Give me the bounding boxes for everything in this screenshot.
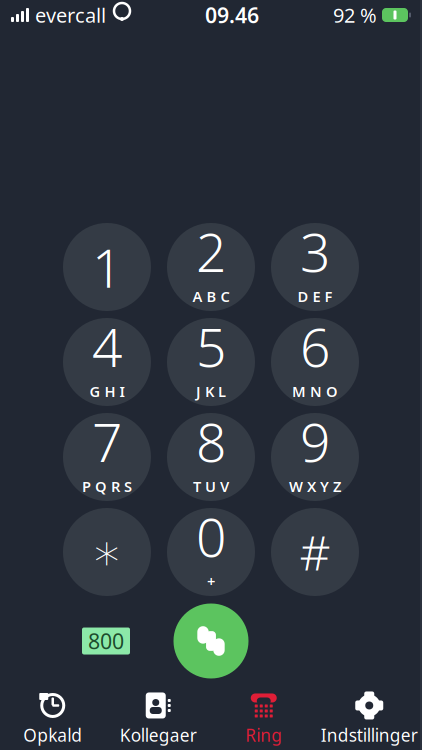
staticText: 7: [92, 406, 122, 477]
button[interactable]: 800: [82, 627, 130, 654]
staticText: 800: [88, 627, 124, 655]
staticText: evercall: [35, 2, 106, 28]
staticText: J K L: [196, 382, 226, 401]
staticText: Opkald: [23, 723, 82, 746]
button[interactable]: 5: [167, 318, 255, 406]
staticText: 09.46: [205, 1, 259, 29]
button[interactable]: 8: [167, 413, 255, 501]
button[interactable]: Call: [173, 603, 248, 678]
staticText: Ring: [245, 723, 282, 746]
staticText: 1: [92, 232, 122, 302]
button[interactable]: 0: [167, 508, 255, 596]
button[interactable]: Kollegaer: [105, 689, 211, 749]
button[interactable]: 7: [63, 413, 151, 501]
button[interactable]: 6: [271, 318, 359, 406]
button[interactable]: 9: [271, 413, 359, 501]
staticText: Indstillinger: [321, 723, 418, 746]
staticText: 92 %: [333, 2, 377, 28]
button[interactable]: ∗: [63, 508, 151, 596]
staticText: ∗: [91, 523, 123, 581]
staticText: 0: [196, 501, 226, 572]
staticText: 4: [92, 311, 122, 382]
button[interactable]: Indstillinger: [316, 689, 422, 749]
staticText: W X Y Z: [289, 477, 341, 496]
staticText: 2: [196, 216, 226, 287]
button[interactable]: #: [271, 508, 359, 596]
staticText: 3: [300, 216, 330, 287]
staticText: 9: [300, 406, 330, 477]
button[interactable]: Ring: [211, 689, 316, 749]
staticText: 8: [196, 406, 226, 477]
button[interactable]: 4: [63, 318, 151, 406]
staticText: +: [207, 572, 215, 591]
staticText: 5: [196, 311, 226, 382]
staticText: M N O: [292, 382, 338, 401]
staticText: D E F: [297, 287, 332, 306]
button[interactable]: 2: [167, 223, 255, 311]
staticText: P Q R S: [82, 477, 132, 496]
button[interactable]: 1: [63, 223, 151, 311]
staticText: Kollegaer: [120, 723, 197, 746]
staticText: T U V: [193, 477, 229, 496]
staticText: G H I: [89, 382, 124, 401]
staticText: A B C: [192, 287, 229, 306]
staticText: 6: [300, 311, 330, 382]
button[interactable]: Opkald: [0, 689, 105, 749]
button[interactable]: 3: [271, 223, 359, 311]
staticText: #: [299, 520, 330, 584]
